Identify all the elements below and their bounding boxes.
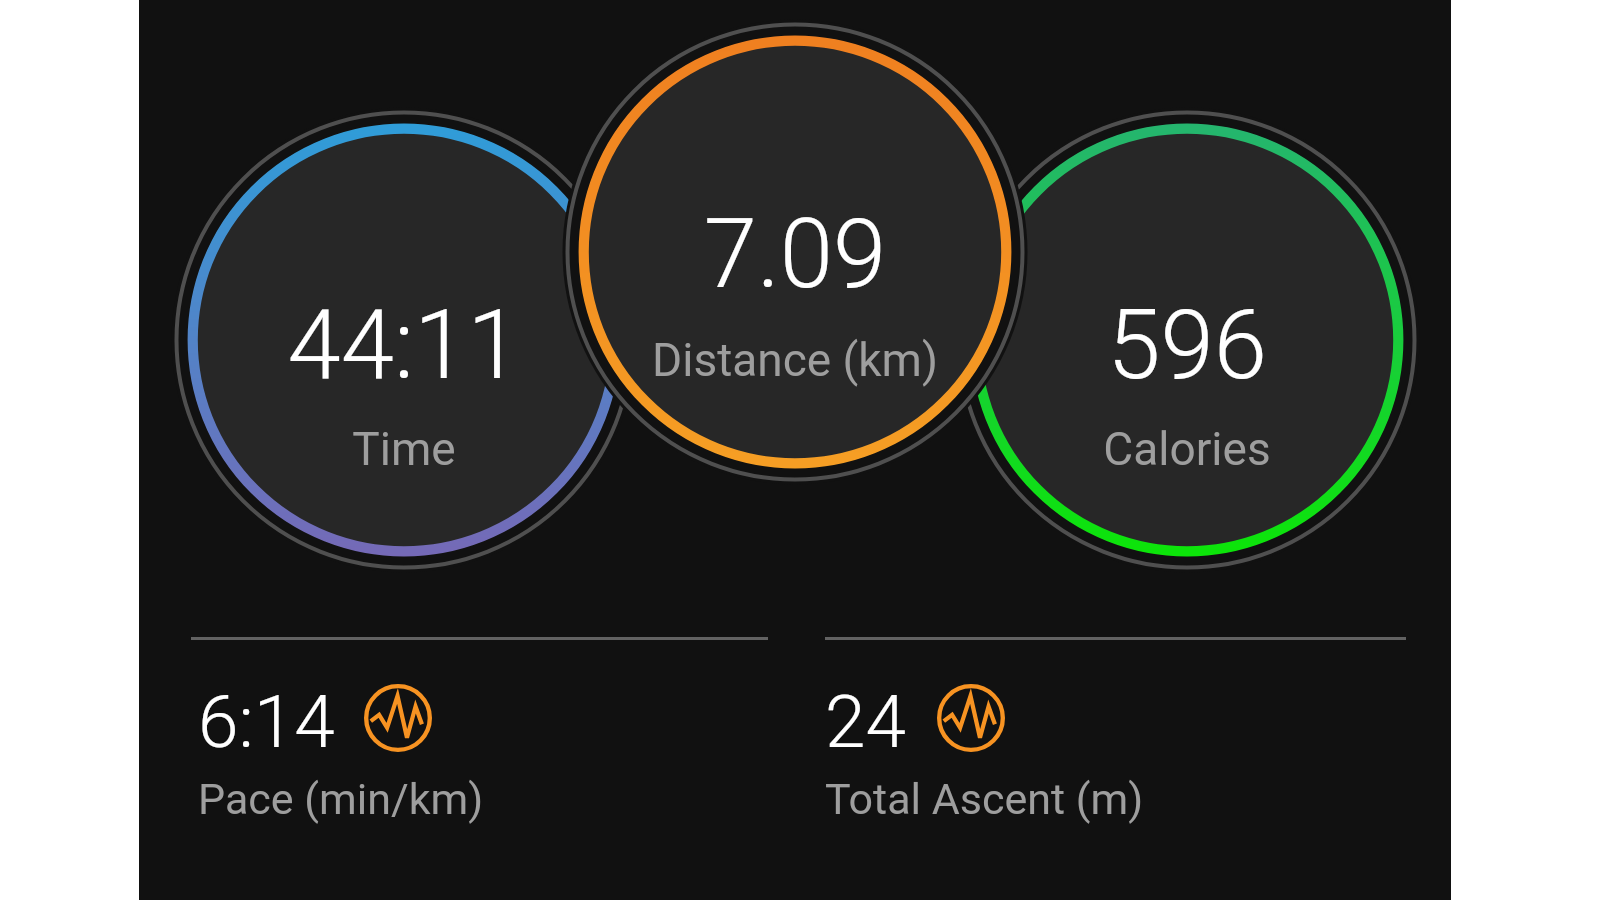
button[interactable]: 7.09: [560, 17, 1030, 487]
staticText: 44:11: [169, 289, 639, 402]
staticText: 24: [825, 679, 906, 765]
staticText: Time: [169, 422, 639, 476]
button[interactable]: 6:14: [191, 637, 768, 837]
button[interactable]: 596: [952, 105, 1422, 575]
staticText: Total Ascent (m): [825, 774, 1144, 824]
staticText: 6:14: [198, 679, 335, 765]
staticText: 7.09: [560, 198, 1030, 311]
staticText: Distance (km): [560, 333, 1030, 387]
staticText: Calories: [952, 422, 1422, 476]
button[interactable]: 24: [825, 637, 1406, 837]
staticText: Pace (min/km): [198, 774, 484, 824]
other: Pace trend: [364, 684, 432, 752]
staticText: 596: [952, 289, 1422, 402]
other: Ascent trend: [937, 684, 1005, 752]
button[interactable]: 44:11: [169, 105, 639, 575]
